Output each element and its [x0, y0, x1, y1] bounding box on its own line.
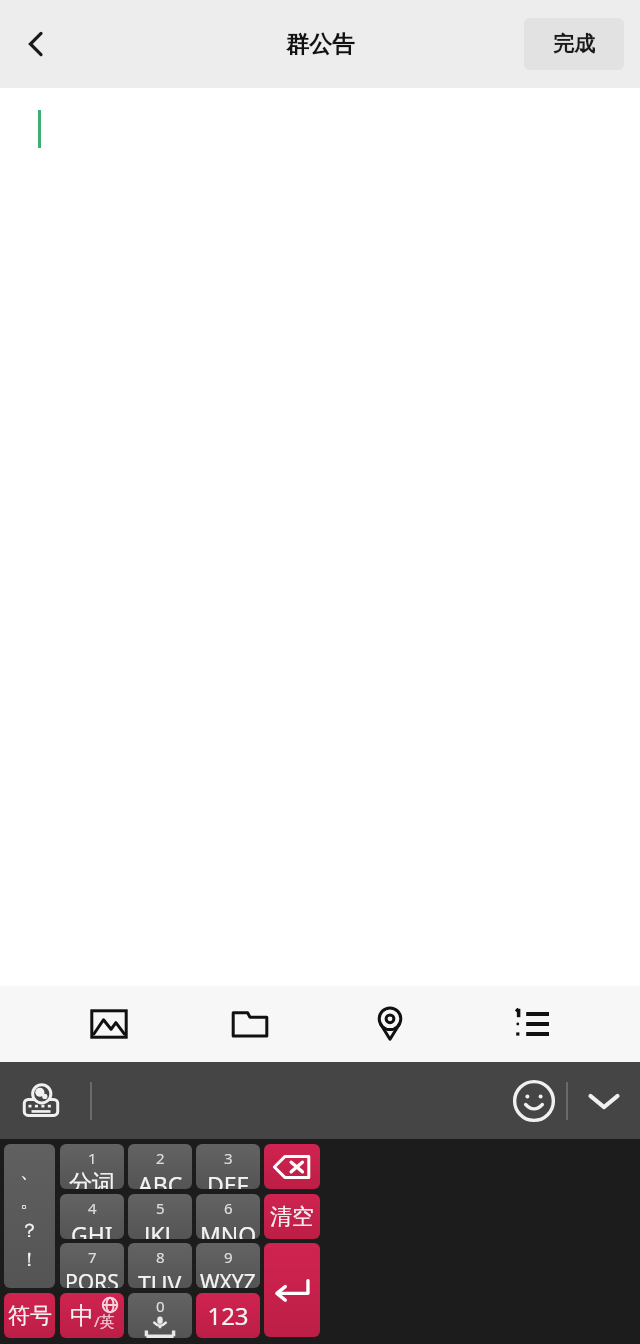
button[interactable]: 9	[196, 1243, 260, 1288]
button[interactable]: 2	[128, 1144, 192, 1189]
button[interactable]: 、	[4, 1144, 55, 1288]
staticText: WXYZ	[200, 1268, 256, 1288]
staticText: 8	[156, 1247, 165, 1267]
staticText: TUV	[138, 1268, 182, 1288]
button[interactable]: 符号	[4, 1293, 55, 1338]
button[interactable]: Switch input language	[12, 1072, 70, 1130]
button[interactable]: Location	[358, 992, 422, 1056]
staticText: 完成	[553, 31, 595, 57]
button[interactable]: Hide keyboard	[568, 1065, 640, 1137]
staticText: MNO	[200, 1219, 257, 1239]
button[interactable]: 123	[196, 1293, 260, 1338]
button[interactable]: Key	[264, 1144, 320, 1189]
button[interactable]: 7	[60, 1243, 124, 1288]
button[interactable]: 4	[60, 1194, 124, 1239]
staticText: 0	[156, 1296, 165, 1316]
button[interactable]: 中	[60, 1293, 124, 1338]
button[interactable]: 8	[128, 1243, 192, 1288]
button[interactable]: 5	[128, 1194, 192, 1239]
staticText: 。	[20, 1189, 39, 1213]
button[interactable]: 3	[196, 1144, 260, 1189]
staticText: ABC	[138, 1169, 183, 1189]
staticText: 中	[70, 1301, 94, 1331]
button[interactable]: 完成	[524, 18, 624, 70]
staticText: 2	[156, 1148, 165, 1168]
button[interactable]: Image	[77, 992, 141, 1056]
staticText: 3	[224, 1148, 233, 1168]
staticText: ！	[20, 1248, 39, 1272]
staticText: 5	[156, 1198, 165, 1218]
button[interactable]: List	[499, 992, 563, 1056]
staticText: 6	[224, 1198, 233, 1218]
button[interactable]: Folder	[218, 992, 282, 1056]
button[interactable]: Key	[264, 1243, 320, 1337]
staticText: 分词	[69, 1169, 115, 1189]
staticText: 清空	[270, 1203, 314, 1231]
staticText: /英	[94, 1311, 115, 1331]
button[interactable]: Emoji	[502, 1069, 566, 1133]
staticText: 123	[207, 1299, 249, 1332]
staticText: ？	[20, 1219, 39, 1243]
staticText: GHI	[71, 1219, 113, 1239]
button[interactable]: 1	[60, 1144, 124, 1189]
staticText: JKL	[144, 1219, 177, 1239]
button[interactable]: 清空	[264, 1194, 320, 1239]
button[interactable]: 6	[196, 1194, 260, 1239]
staticText: 7	[88, 1247, 97, 1267]
staticText: 1	[88, 1148, 97, 1168]
staticText: 群公告	[286, 30, 355, 59]
button[interactable]: Back	[8, 16, 64, 72]
staticText: 9	[224, 1247, 233, 1267]
staticText: DEF	[207, 1169, 249, 1189]
staticText: 符号	[8, 1302, 52, 1330]
staticText: PQRS	[65, 1268, 119, 1288]
staticText: 、	[20, 1160, 39, 1184]
button[interactable]: Space	[128, 1293, 192, 1338]
staticText: 4	[88, 1198, 97, 1218]
